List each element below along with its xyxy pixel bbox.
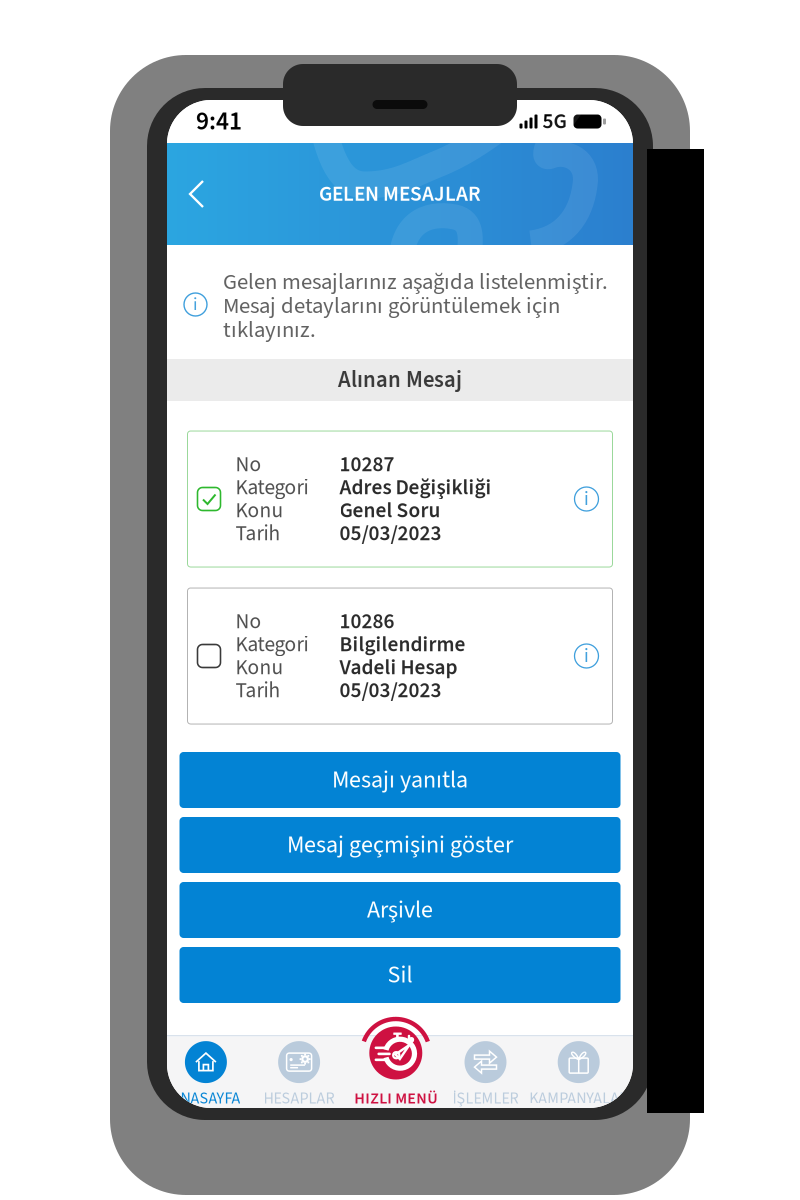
- staticText: KAMPANYALAR: [529, 1087, 628, 1110]
- staticText: Vadeli Hesap: [339, 652, 457, 683]
- staticText: İŞLEMLER: [452, 1087, 518, 1110]
- staticText: Bilgilendirme: [339, 629, 465, 660]
- staticText: Sil: [387, 958, 412, 992]
- button[interactable]: Geri: [167, 161, 229, 227]
- staticText: Tarih: [235, 518, 280, 549]
- button[interactable]: Sil: [179, 947, 620, 1003]
- staticText: Konu: [235, 652, 283, 683]
- button[interactable]: İŞLEMLER: [439, 1035, 532, 1108]
- staticText: Mesajı yanıtla: [332, 763, 468, 797]
- staticText: Konu: [235, 495, 283, 526]
- staticText: i: [193, 291, 198, 318]
- button[interactable]: Arşivle: [179, 882, 620, 938]
- staticText: No: [235, 449, 261, 480]
- staticText: Genel Soru: [339, 495, 440, 526]
- staticText: Tarih: [235, 675, 280, 706]
- button[interactable]: KAMPANYALAR: [532, 1035, 625, 1108]
- staticText: Mesaj detaylarını görüntülemek için: [223, 290, 560, 322]
- staticText: Adres Değişikliği: [339, 472, 491, 503]
- staticText: Kategori: [235, 472, 308, 503]
- staticText: Kategori: [235, 629, 308, 660]
- staticText: 05/03/2023: [339, 675, 441, 706]
- staticText: HIZLI MENÜ: [354, 1087, 437, 1110]
- button[interactable]: No: [187, 431, 612, 567]
- button[interactable]: Mesaj geçmişini göster: [179, 817, 620, 873]
- staticText: No: [235, 606, 261, 637]
- staticText: 10287: [339, 449, 394, 480]
- staticText: 5G: [542, 106, 566, 137]
- staticText: tıklayınız.: [223, 314, 316, 346]
- staticText: 10286: [339, 606, 394, 637]
- staticText: 9:41: [196, 103, 242, 140]
- staticText: HESAPLAR: [264, 1087, 335, 1110]
- staticText: i: [584, 485, 589, 513]
- staticText: Arşivle: [367, 893, 433, 927]
- button[interactable]: Hızlı Menü: [349, 1035, 442, 1108]
- button[interactable]: HESAPLAR: [252, 1035, 346, 1108]
- staticText: Mesaj geçmişini göster: [287, 828, 513, 862]
- staticText: ANASAYFA: [171, 1087, 240, 1110]
- button[interactable]: ANASAYFA: [159, 1035, 252, 1108]
- button[interactable]: No: [187, 588, 612, 724]
- staticText: Gelen mesajlarınız aşağıda listelenmişti…: [223, 266, 608, 298]
- button[interactable]: Mesajı yanıtla: [179, 752, 620, 808]
- staticText: 05/03/2023: [339, 518, 441, 549]
- staticText: i: [584, 642, 589, 670]
- staticText: GELEN MESAJLAR: [319, 179, 481, 209]
- staticText: Alınan Mesaj: [338, 364, 462, 396]
